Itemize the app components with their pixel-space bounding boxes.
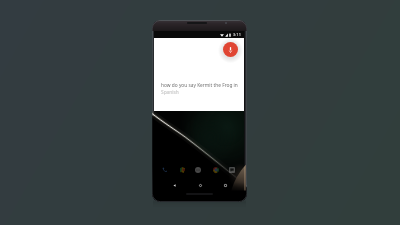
button[interactable]: App shortcut [228, 166, 235, 173]
button[interactable]: Voice search [223, 42, 238, 57]
button[interactable]: App shortcut [161, 166, 168, 173]
button[interactable]: how do you say Kermit the Frog in [161, 82, 238, 96]
button[interactable]: Back [172, 183, 177, 188]
button[interactable]: Home [198, 183, 203, 188]
staticText: Spanish [161, 89, 179, 96]
button[interactable]: App shortcut [179, 166, 186, 173]
button[interactable]: App shortcut [212, 166, 219, 173]
button[interactable]: App shortcut [194, 166, 201, 173]
staticText: 3:11 [233, 32, 241, 37]
staticText: how do you say Kermit the Frog in [161, 82, 238, 89]
button[interactable]: Recent apps [223, 183, 228, 188]
